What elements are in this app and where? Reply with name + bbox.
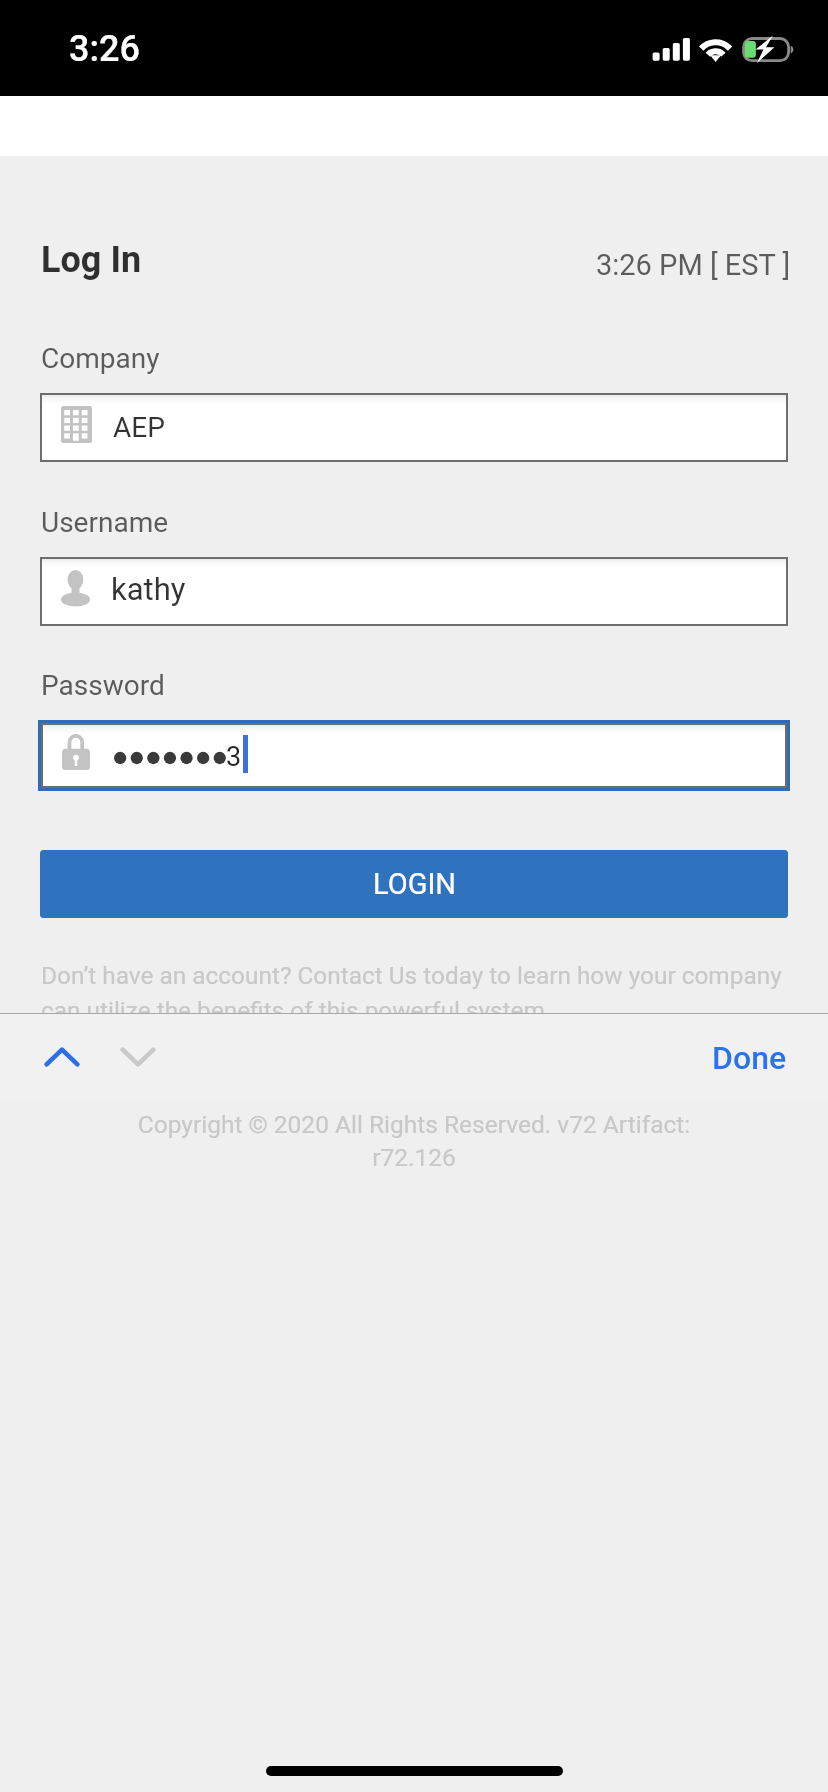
- button[interactable]: 3: [41, 723, 787, 788]
- staticText: Username: [41, 506, 169, 539]
- button[interactable]: AEP: [40, 393, 788, 462]
- staticText: 3:26 PM [ EST ]: [596, 248, 791, 282]
- staticText: Company: [41, 342, 160, 375]
- staticText: 3: [226, 741, 242, 773]
- button[interactable]: kathy: [40, 557, 788, 626]
- staticText: Copyright © 2020 All Rights Reserved. v7…: [127, 1110, 701, 1172]
- staticText: kathy: [111, 571, 186, 607]
- staticText: Log In: [41, 239, 142, 281]
- staticText: AEP: [113, 411, 165, 444]
- button[interactable]: LOGIN: [40, 850, 788, 918]
- staticText: Done: [712, 1039, 787, 1077]
- staticText: 3:26: [69, 28, 140, 70]
- button[interactable]: Next field: [102, 1025, 174, 1089]
- staticText: Password: [41, 669, 165, 702]
- staticText: LOGIN: [373, 867, 456, 901]
- staticText: Don’t have an account? Contact Us today …: [41, 961, 789, 1025]
- button[interactable]: Done: [712, 1039, 787, 1077]
- button[interactable]: Previous field: [26, 1025, 98, 1089]
